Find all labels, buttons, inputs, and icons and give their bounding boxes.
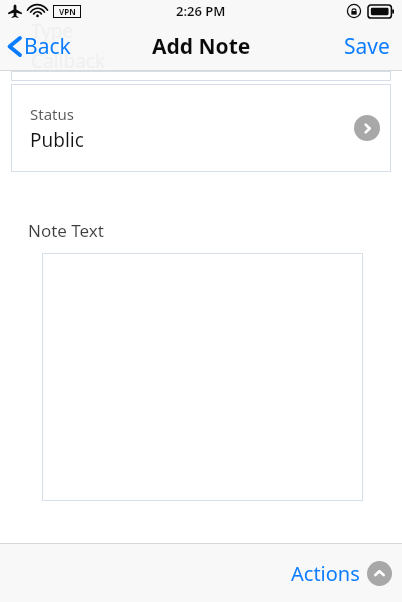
button[interactable]: Actions (277, 552, 402, 595)
staticText: Status (30, 104, 74, 124)
staticText: 2:26 PM (176, 2, 226, 20)
other: Choose status (354, 115, 380, 141)
staticText: VPN (59, 6, 76, 17)
staticText: Add Note (152, 32, 251, 61)
staticText: Back (24, 32, 71, 61)
staticText: Note Text (28, 219, 104, 242)
staticText: Callback (31, 48, 106, 74)
staticText: Public (30, 127, 84, 153)
button[interactable]: Back (0, 26, 81, 67)
staticText: Type (31, 18, 74, 44)
button[interactable]: Save (332, 24, 402, 69)
staticText: Actions (291, 560, 360, 587)
button[interactable] (42, 253, 363, 501)
staticText: Save (344, 32, 390, 61)
button[interactable]: Status (11, 84, 391, 172)
